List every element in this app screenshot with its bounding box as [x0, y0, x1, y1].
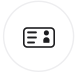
- button[interactable]: Contact card: [4, 1, 74, 71]
